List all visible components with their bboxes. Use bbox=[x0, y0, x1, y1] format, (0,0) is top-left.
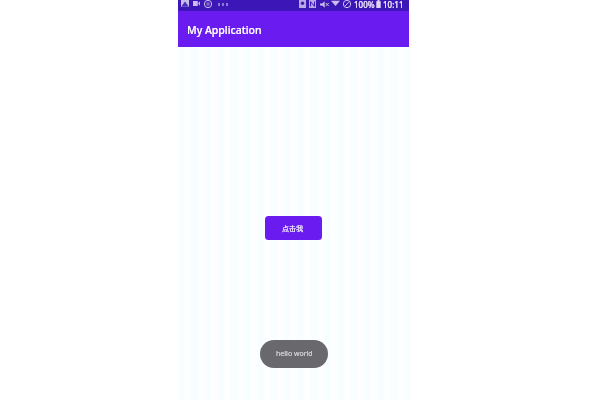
staticText: 100% bbox=[354, 0, 375, 10]
staticText: 10:11 bbox=[383, 0, 404, 10]
staticText: 点击我 bbox=[282, 224, 303, 233]
other: Status bar bbox=[178, 0, 409, 11]
button[interactable]: 点击我 bbox=[265, 216, 322, 240]
staticText: My Application bbox=[187, 23, 262, 37]
staticText: hello world bbox=[276, 349, 313, 359]
